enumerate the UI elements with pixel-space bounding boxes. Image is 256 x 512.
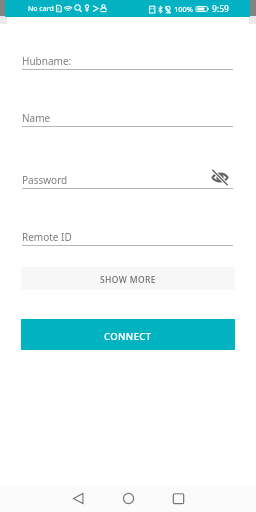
staticText: SHOW MORE [100,274,156,286]
button[interactable]: Show password [208,166,231,188]
staticText: Remote ID [22,230,72,244]
staticText: No card [28,4,54,14]
staticText: Hubname: [22,54,72,68]
button[interactable]: SHOW MORE [21,267,235,290]
staticText: Name [22,111,51,125]
staticText: CONNECT [104,330,152,343]
staticText: Password [22,173,68,187]
button[interactable]: Back [53,485,103,512]
button[interactable]: Home [103,485,153,512]
button[interactable]: Recent apps [153,485,203,512]
button[interactable]: CONNECT [21,319,235,350]
staticText: 9:59 [212,3,229,15]
staticText: 100% [174,4,194,14]
